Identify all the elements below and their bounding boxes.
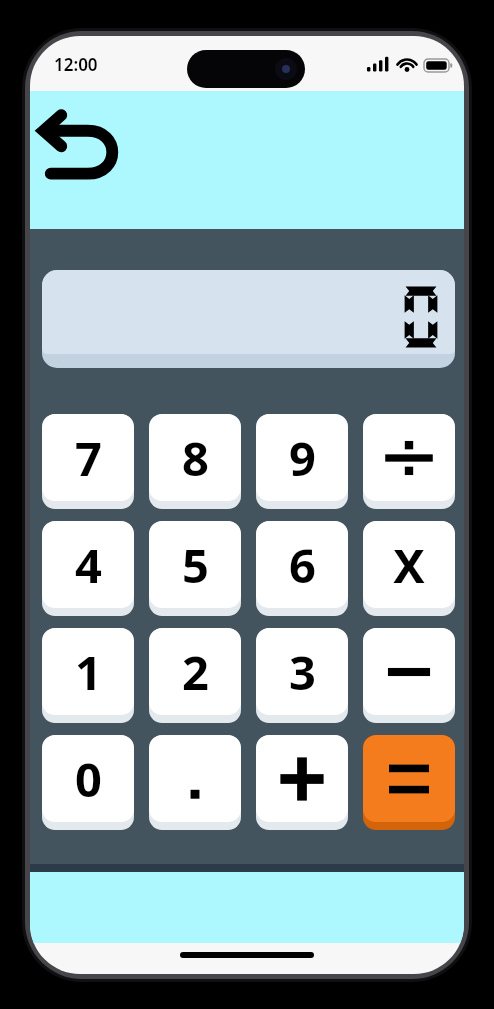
button[interactable]: 8 (149, 414, 241, 509)
staticText: X (393, 533, 425, 597)
button[interactable]: 9 (256, 414, 348, 509)
staticText: 12:00 (54, 53, 98, 76)
button[interactable]: Equals (363, 735, 455, 830)
staticText: 5 (182, 533, 209, 597)
staticText: 7 (75, 426, 102, 490)
button[interactable]: 7 (42, 414, 134, 509)
button[interactable]: 2 (149, 628, 241, 723)
button[interactable]: 6 (256, 521, 348, 616)
button[interactable]: Plus (256, 735, 348, 830)
staticText: 2 (182, 640, 209, 704)
staticText: 4 (75, 533, 102, 597)
staticText: 0 (75, 747, 102, 811)
button[interactable]: 3 (256, 628, 348, 723)
staticText: 3 (289, 640, 316, 704)
button[interactable]: 1 (42, 628, 134, 723)
staticText: 6 (289, 533, 316, 597)
staticText: 1 (75, 640, 102, 704)
staticText: 9 (289, 426, 316, 490)
button[interactable]: 4 (42, 521, 134, 616)
button[interactable]: Minus (363, 628, 455, 723)
staticText: 8 (182, 426, 209, 490)
button[interactable]: Divide (363, 414, 455, 509)
button[interactable]: 5 (149, 521, 241, 616)
button[interactable]: 0 (42, 735, 134, 830)
button[interactable]: X (363, 521, 455, 616)
button[interactable]: Decimal point (149, 735, 241, 830)
button[interactable]: Back (39, 110, 123, 184)
